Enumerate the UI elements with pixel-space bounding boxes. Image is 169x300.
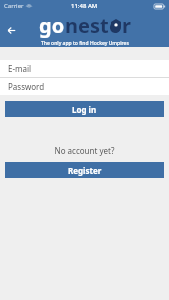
staticText: Carrier xyxy=(4,2,24,10)
button[interactable]: Back xyxy=(0,19,22,41)
button[interactable]: Register xyxy=(5,162,164,178)
button[interactable]: Password xyxy=(0,78,169,95)
staticText: The only app to find Hockey Umpires xyxy=(41,40,129,47)
staticText: Register xyxy=(68,165,102,176)
staticText: Log in xyxy=(72,104,97,115)
staticText: Password xyxy=(8,81,45,92)
staticText: o xyxy=(109,12,122,39)
staticText: go xyxy=(39,12,65,39)
button[interactable]: Log in xyxy=(5,101,164,117)
button[interactable]: E-mail xyxy=(0,60,169,77)
staticText: nest xyxy=(65,12,109,39)
staticText: r xyxy=(122,12,131,39)
staticText: E-mail xyxy=(8,63,32,74)
staticText: No account yet? xyxy=(0,145,169,156)
staticText: 11:48 AM xyxy=(71,2,98,10)
